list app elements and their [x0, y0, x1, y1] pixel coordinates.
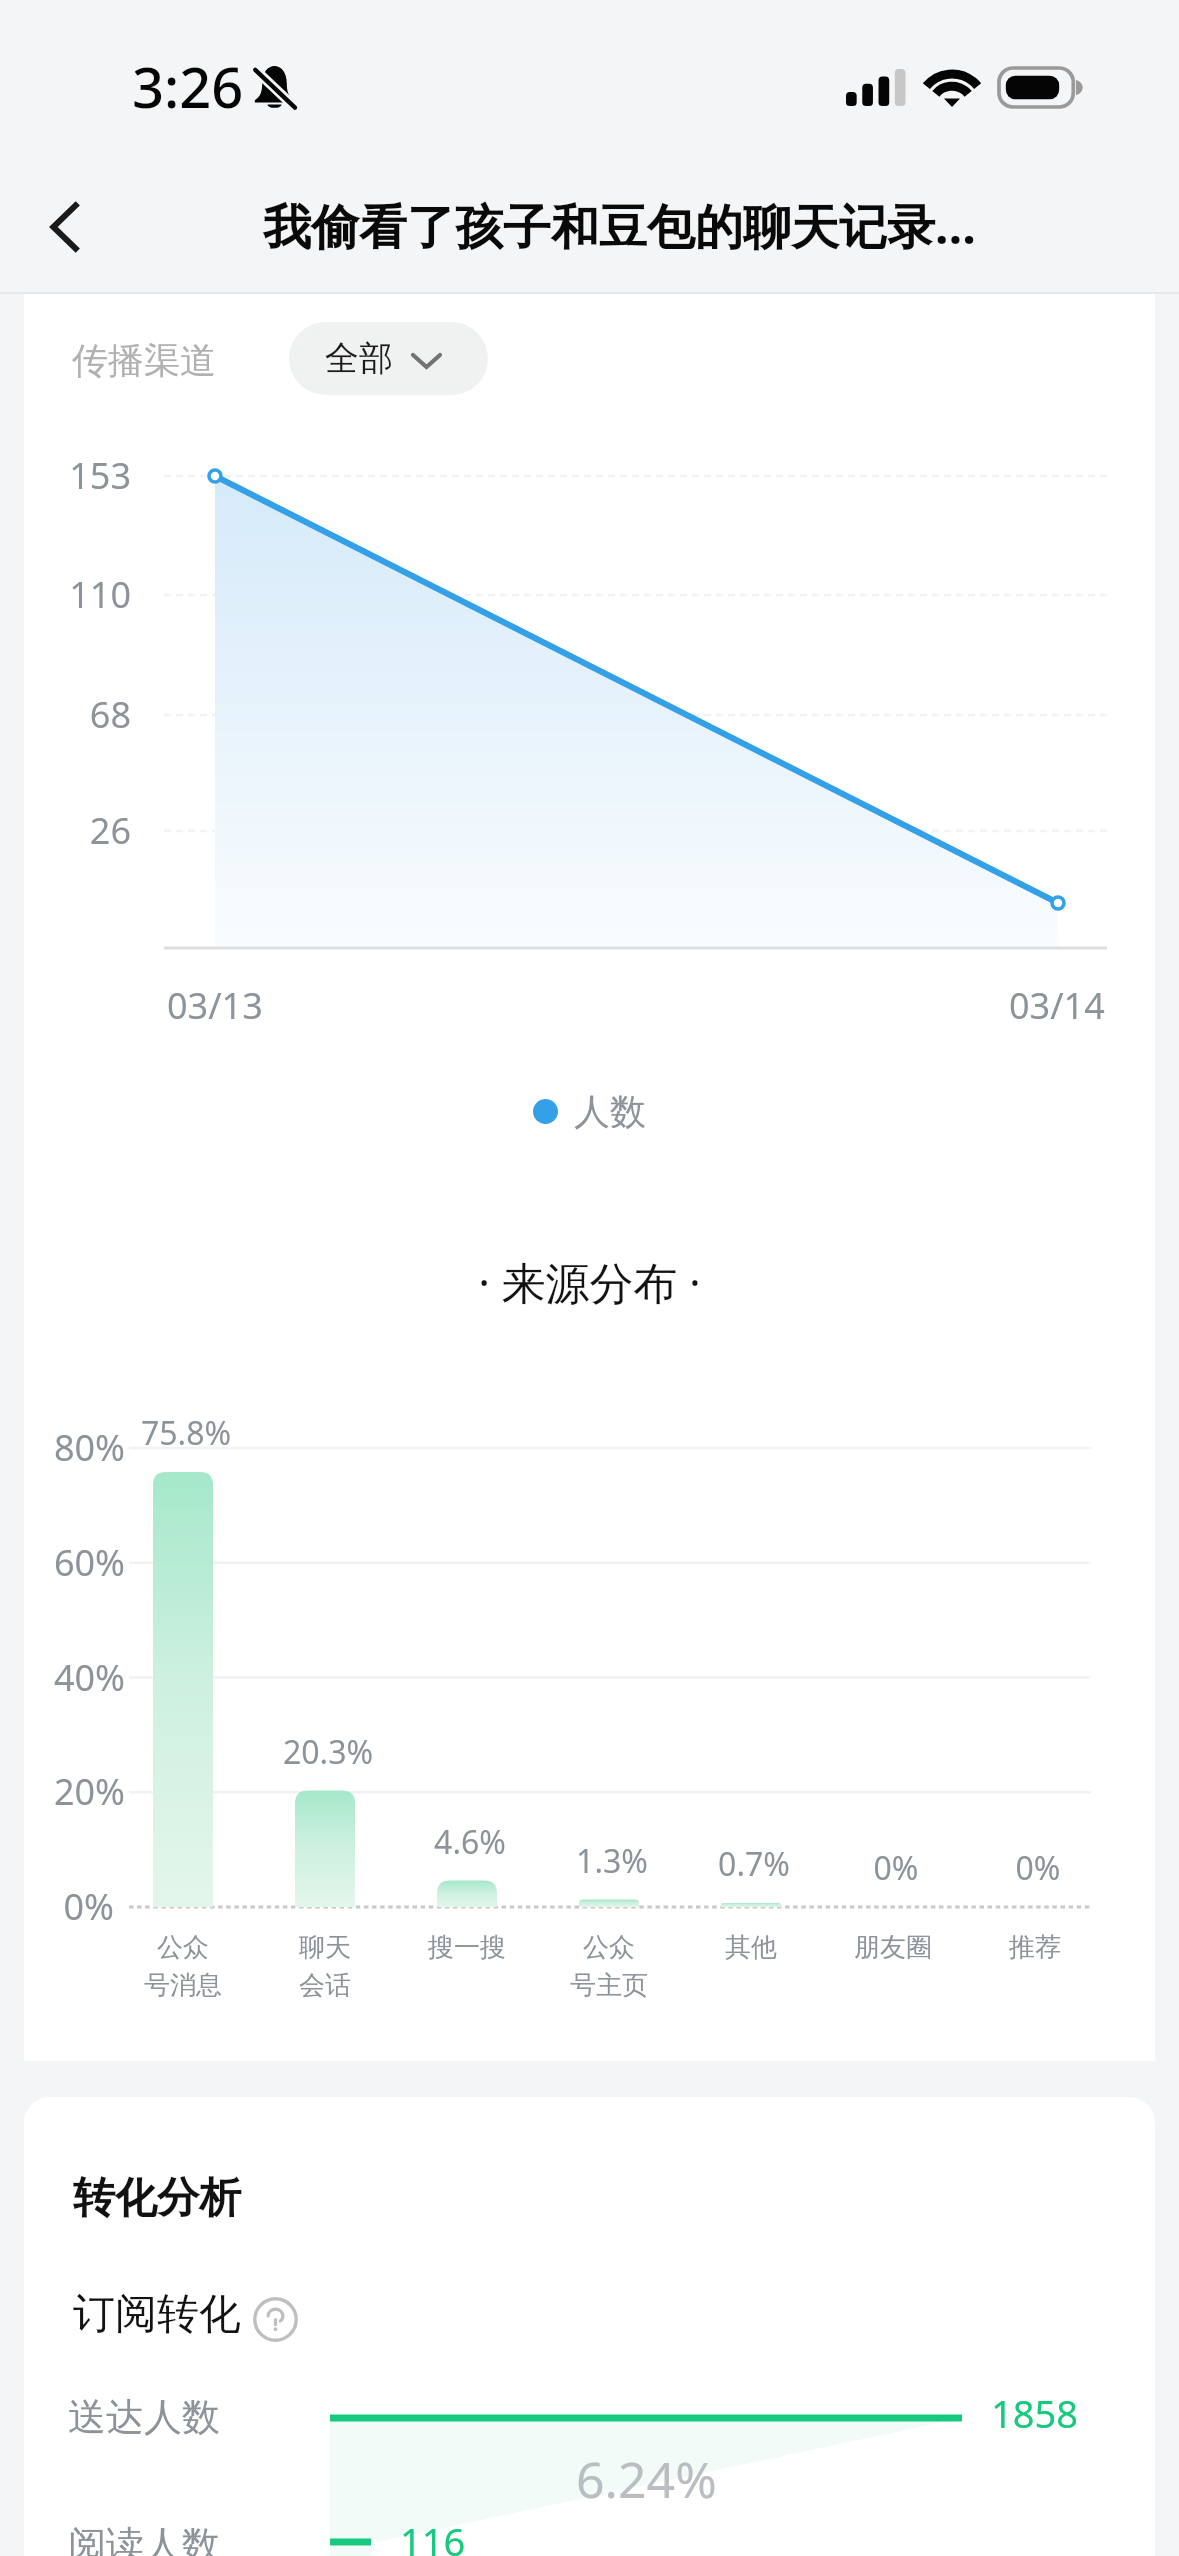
button[interactable]: Back — [31, 191, 103, 263]
staticText: 40% — [24, 1653, 125, 1702]
staticText: 订阅转化 — [73, 2288, 241, 2341]
staticText: 153 — [24, 451, 131, 500]
staticText: 人数 — [574, 1089, 646, 1134]
staticText: 0.7% — [634, 1842, 874, 1886]
staticText: 聊天 — [299, 1931, 351, 1964]
staticText: 其他 — [725, 1931, 777, 1964]
staticText: 20% — [24, 1767, 125, 1816]
staticText: 80% — [24, 1423, 125, 1472]
staticText: 号消息 — [144, 1969, 222, 2002]
staticText: 60% — [24, 1538, 125, 1587]
staticText: 6.24% — [576, 2445, 717, 2513]
staticText: 03/13 — [167, 981, 263, 1030]
staticText: 20.3% — [208, 1730, 448, 1774]
button[interactable]: 全部 — [289, 322, 488, 395]
staticText: 0% — [24, 1882, 114, 1931]
staticText: 搜一搜 — [428, 1931, 506, 1964]
staticText: 1858 — [991, 2387, 1078, 2439]
staticText: 公众 — [583, 1931, 635, 1964]
staticText: 75.8% — [66, 1411, 306, 1455]
staticText: 我偷看了孩子和豆包的聊天记录… — [263, 193, 977, 259]
staticText: 110 — [24, 570, 131, 619]
staticText: 68 — [24, 690, 131, 739]
staticText: 0% — [918, 1846, 1158, 1890]
staticText: 4.6% — [350, 1820, 590, 1864]
staticText: 03/14 — [1009, 981, 1105, 1030]
staticText: · 来源分布 · — [24, 1252, 1155, 1312]
staticText: 送达人数 — [68, 2393, 220, 2441]
staticText: 阅读人数 — [68, 2521, 220, 2556]
staticText: 推荐 — [1009, 1931, 1061, 1964]
staticText: 0% — [776, 1846, 1016, 1890]
staticText: 会话 — [299, 1969, 351, 2002]
staticText: 3:26 — [132, 48, 244, 124]
staticText: 传播渠道 — [72, 338, 216, 383]
staticText: 1.3% — [492, 1839, 732, 1883]
staticText: 116 — [400, 2515, 466, 2556]
staticText: 朋友圈 — [854, 1931, 932, 1964]
staticText: 转化分析 — [73, 2172, 241, 2225]
staticText: 公众 — [157, 1931, 209, 1964]
staticText: 全部 — [325, 337, 393, 380]
staticText: 号主页 — [570, 1969, 648, 2002]
staticText: 26 — [24, 806, 131, 855]
